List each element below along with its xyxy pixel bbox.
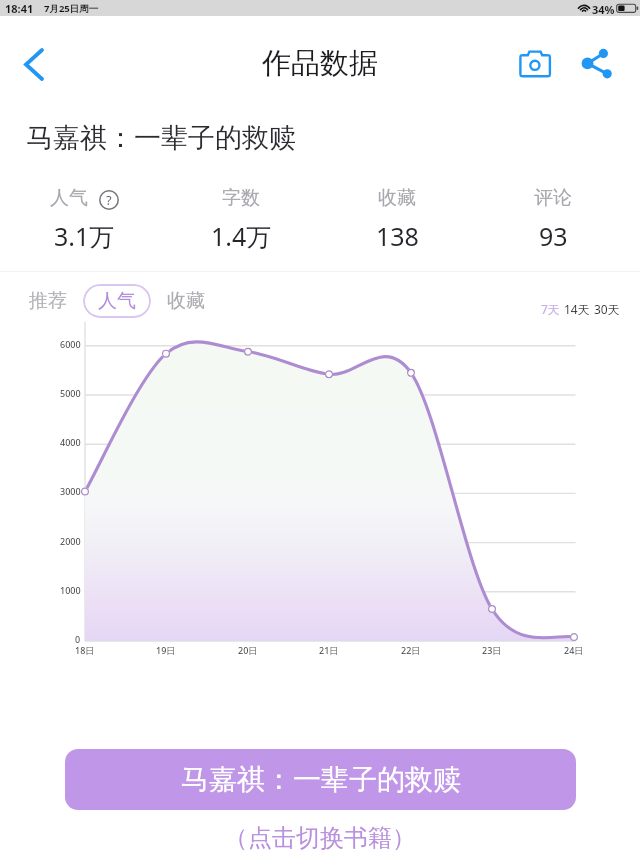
- staticText: 22日: [401, 644, 421, 656]
- staticText: 138: [376, 219, 419, 253]
- staticText: 人气: [98, 289, 136, 313]
- button[interactable]: Camera: [512, 40, 560, 88]
- button[interactable]: 人气: [6, 186, 163, 253]
- staticText: 收藏: [378, 186, 416, 210]
- staticText: 3.1万: [54, 219, 115, 253]
- button[interactable]: Share: [572, 40, 620, 88]
- staticText: 0: [75, 633, 81, 645]
- staticText: 6000: [60, 338, 81, 350]
- staticText: 21日: [319, 644, 339, 656]
- staticText: 字数: [222, 186, 260, 210]
- button[interactable]: 收藏: [167, 289, 205, 313]
- staticText: 20日: [238, 644, 258, 656]
- staticText: 1000: [60, 584, 81, 596]
- staticText: 马嘉祺：一辈子的救赎: [181, 762, 461, 797]
- button[interactable]: 人气: [83, 284, 151, 318]
- staticText: ?: [106, 191, 112, 209]
- button[interactable]: （点击切换书籍）: [224, 823, 416, 853]
- staticText: 7月25日周一: [44, 2, 99, 15]
- staticText: 5000: [60, 387, 81, 399]
- staticText: 3000: [60, 485, 81, 497]
- button[interactable]: Back: [8, 34, 52, 78]
- staticText: 4000: [60, 436, 81, 448]
- staticText: 93: [539, 219, 568, 253]
- staticText: 18:41: [5, 1, 34, 16]
- staticText: 34%: [592, 2, 615, 17]
- button[interactable]: 评论: [475, 186, 631, 253]
- staticText: 23日: [482, 644, 502, 656]
- button[interactable]: 字数: [163, 186, 319, 253]
- staticText: 1.4万: [211, 219, 272, 253]
- staticText: 马嘉祺：一辈子的救赎: [26, 121, 296, 155]
- staticText: 评论: [534, 186, 572, 210]
- button[interactable]: 30天: [594, 301, 620, 317]
- button[interactable]: 推荐: [29, 289, 67, 313]
- staticText: 18日: [75, 644, 95, 656]
- staticText: 2000: [60, 535, 81, 547]
- button[interactable]: 马嘉祺：一辈子的救赎: [65, 749, 576, 810]
- button[interactable]: 14天: [564, 301, 590, 317]
- button[interactable]: 7天: [541, 301, 560, 317]
- staticText: 人气: [50, 186, 88, 210]
- staticText: 19日: [156, 644, 176, 656]
- staticText: 24日: [564, 644, 584, 656]
- button[interactable]: 收藏: [319, 186, 475, 253]
- staticText: 作品数据: [262, 45, 378, 82]
